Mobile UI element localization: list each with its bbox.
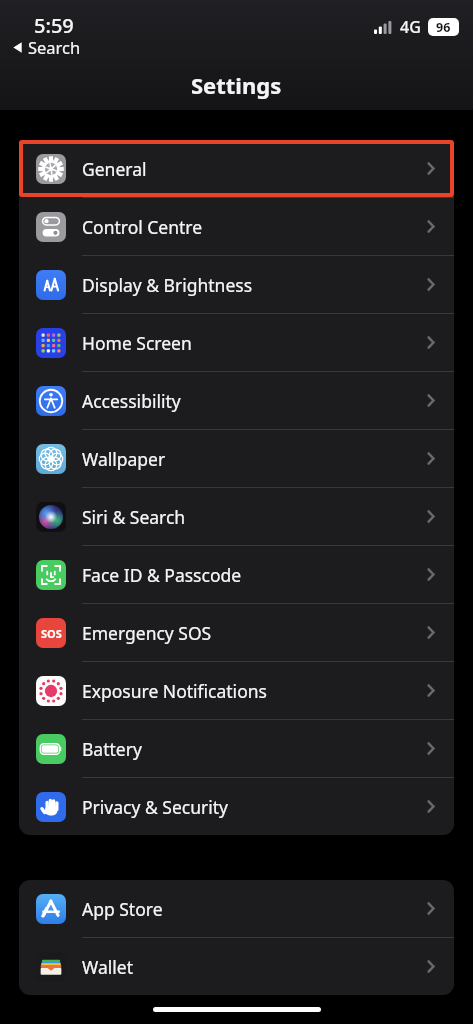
staticText: Siri & Search bbox=[82, 505, 186, 529]
staticText: Control Centre bbox=[82, 215, 203, 239]
staticText: App Store bbox=[82, 897, 163, 921]
staticText: Exposure Notifications bbox=[82, 679, 267, 703]
staticText: Wallpaper bbox=[82, 447, 166, 471]
button[interactable]: Control Centre bbox=[19, 198, 454, 256]
staticText: Accessibility bbox=[82, 389, 181, 413]
staticText: General bbox=[82, 157, 147, 181]
staticText: Settings bbox=[191, 70, 282, 100]
button[interactable]: Face ID & Passcode bbox=[19, 546, 454, 604]
button[interactable]: SOS bbox=[19, 604, 454, 662]
button[interactable]: Accessibility bbox=[19, 372, 454, 430]
button[interactable]: Exposure Notifications bbox=[19, 662, 454, 720]
staticText: Search bbox=[28, 36, 81, 58]
staticText: 5:59 bbox=[34, 12, 74, 39]
button[interactable]: Wallpaper bbox=[19, 430, 454, 488]
staticText: Emergency SOS bbox=[82, 621, 212, 645]
staticText: Face ID & Passcode bbox=[82, 563, 242, 587]
button[interactable]: Display & Brightness bbox=[19, 256, 454, 314]
staticText: Home Screen bbox=[82, 331, 192, 355]
button[interactable]: General bbox=[19, 140, 454, 198]
staticText: SOS bbox=[41, 626, 62, 641]
button[interactable]: Wallet bbox=[19, 938, 454, 995]
button[interactable]: Home Screen bbox=[19, 314, 454, 372]
staticText: Privacy & Security bbox=[82, 795, 228, 819]
button[interactable]: App Store bbox=[19, 880, 454, 938]
staticText: 96 bbox=[436, 19, 451, 36]
button[interactable]: Battery bbox=[19, 720, 454, 778]
button[interactable]: Siri & Search bbox=[19, 488, 454, 546]
staticText: Wallet bbox=[82, 955, 133, 979]
staticText: 4G bbox=[400, 16, 421, 38]
staticText: Display & Brightness bbox=[82, 273, 253, 297]
staticText: Battery bbox=[82, 737, 142, 761]
button[interactable]: Privacy & Security bbox=[19, 778, 454, 835]
